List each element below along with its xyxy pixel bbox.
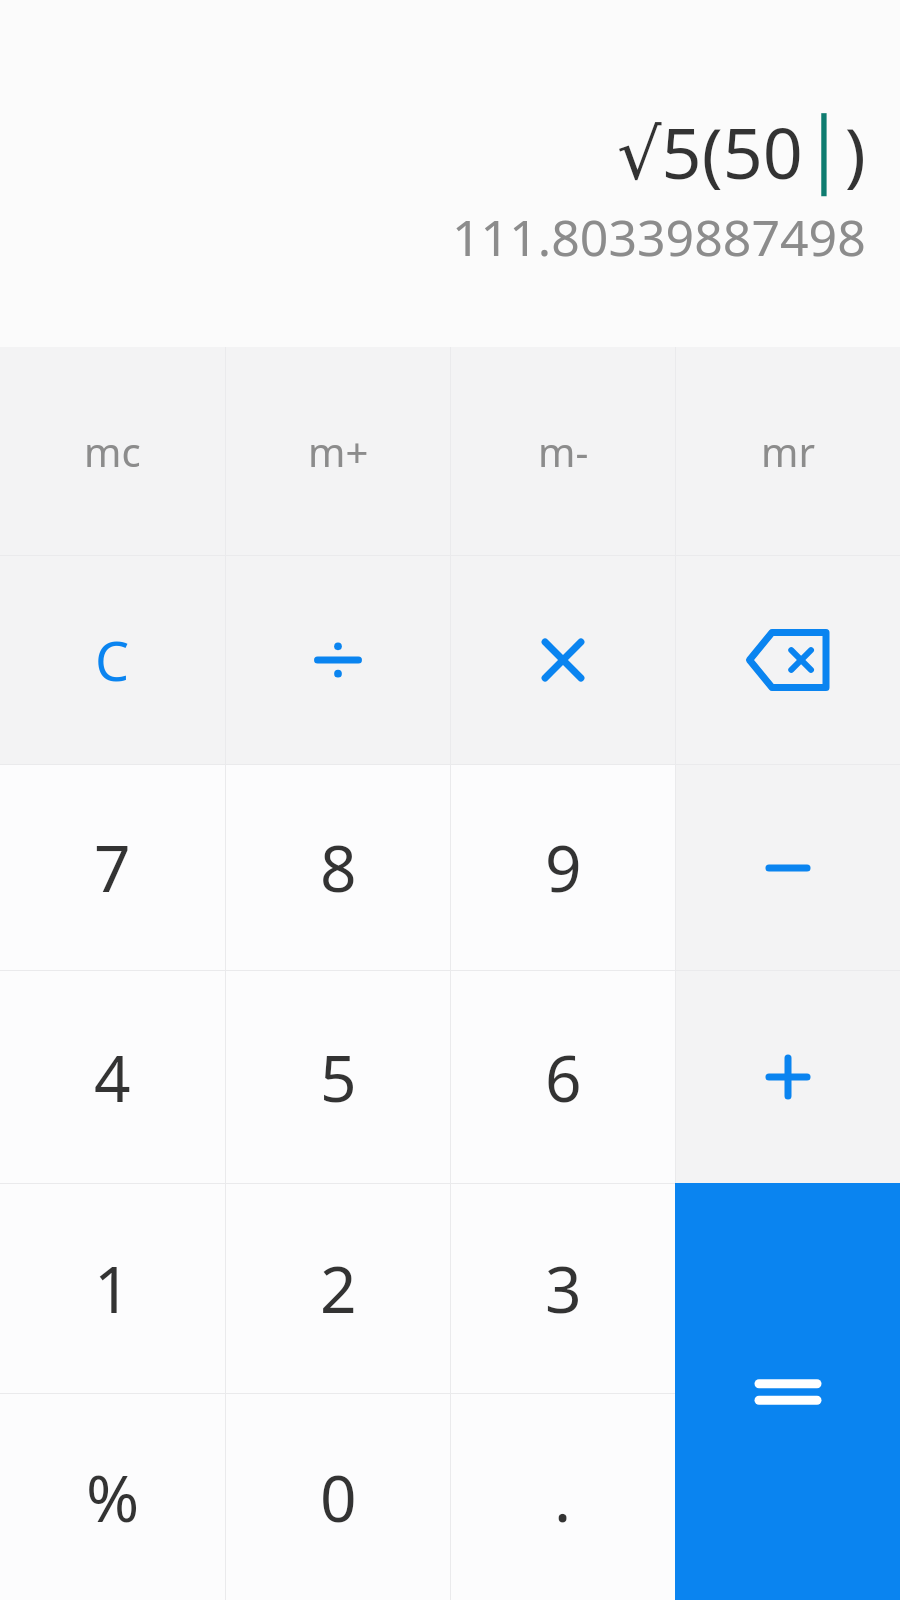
staticText: 2 (320, 1245, 357, 1332)
button[interactable]: m+ (226, 347, 450, 555)
staticText: . (554, 1454, 572, 1541)
staticText: 0 (320, 1454, 357, 1541)
button[interactable]: Plus (676, 971, 900, 1183)
button[interactable]: Clear (0, 556, 225, 764)
button[interactable]: 5 (226, 971, 450, 1183)
button[interactable]: Equals (675, 1183, 900, 1600)
staticText: 5 (320, 1034, 357, 1121)
button[interactable]: 8 (226, 765, 450, 970)
staticText: 3 (545, 1245, 582, 1332)
button[interactable]: Backspace (676, 556, 900, 764)
staticText: 111.80339887498 (452, 203, 866, 271)
staticText: m- (538, 424, 589, 478)
button[interactable]: m- (451, 347, 675, 555)
staticText: 7 (94, 824, 131, 911)
staticText: C (95, 623, 130, 697)
button[interactable]: 7 (0, 765, 225, 970)
staticText: % (86, 1454, 140, 1541)
staticText: mr (761, 424, 815, 478)
button[interactable]: 1 (0, 1184, 225, 1393)
button[interactable]: . (451, 1394, 675, 1600)
staticText: 6 (545, 1034, 582, 1121)
button[interactable]: 6 (451, 971, 675, 1183)
button[interactable]: Multiply (451, 556, 675, 764)
button[interactable]: % (0, 1394, 225, 1600)
button[interactable]: 0 (226, 1394, 450, 1600)
staticText: √5(50│) (617, 104, 866, 199)
staticText: m+ (308, 424, 369, 478)
staticText: 4 (94, 1034, 131, 1121)
button[interactable]: 4 (0, 971, 225, 1183)
button[interactable]: mr (676, 347, 900, 555)
button[interactable]: Divide (226, 556, 450, 764)
button[interactable]: 2 (226, 1184, 450, 1393)
staticText: mc (84, 424, 141, 478)
staticText: 9 (545, 824, 582, 911)
button[interactable]: 3 (451, 1184, 675, 1393)
staticText: 8 (320, 824, 357, 911)
button[interactable]: Minus (676, 765, 900, 970)
button[interactable]: 9 (451, 765, 675, 970)
button[interactable]: mc (0, 347, 225, 555)
staticText: 1 (94, 1245, 131, 1332)
